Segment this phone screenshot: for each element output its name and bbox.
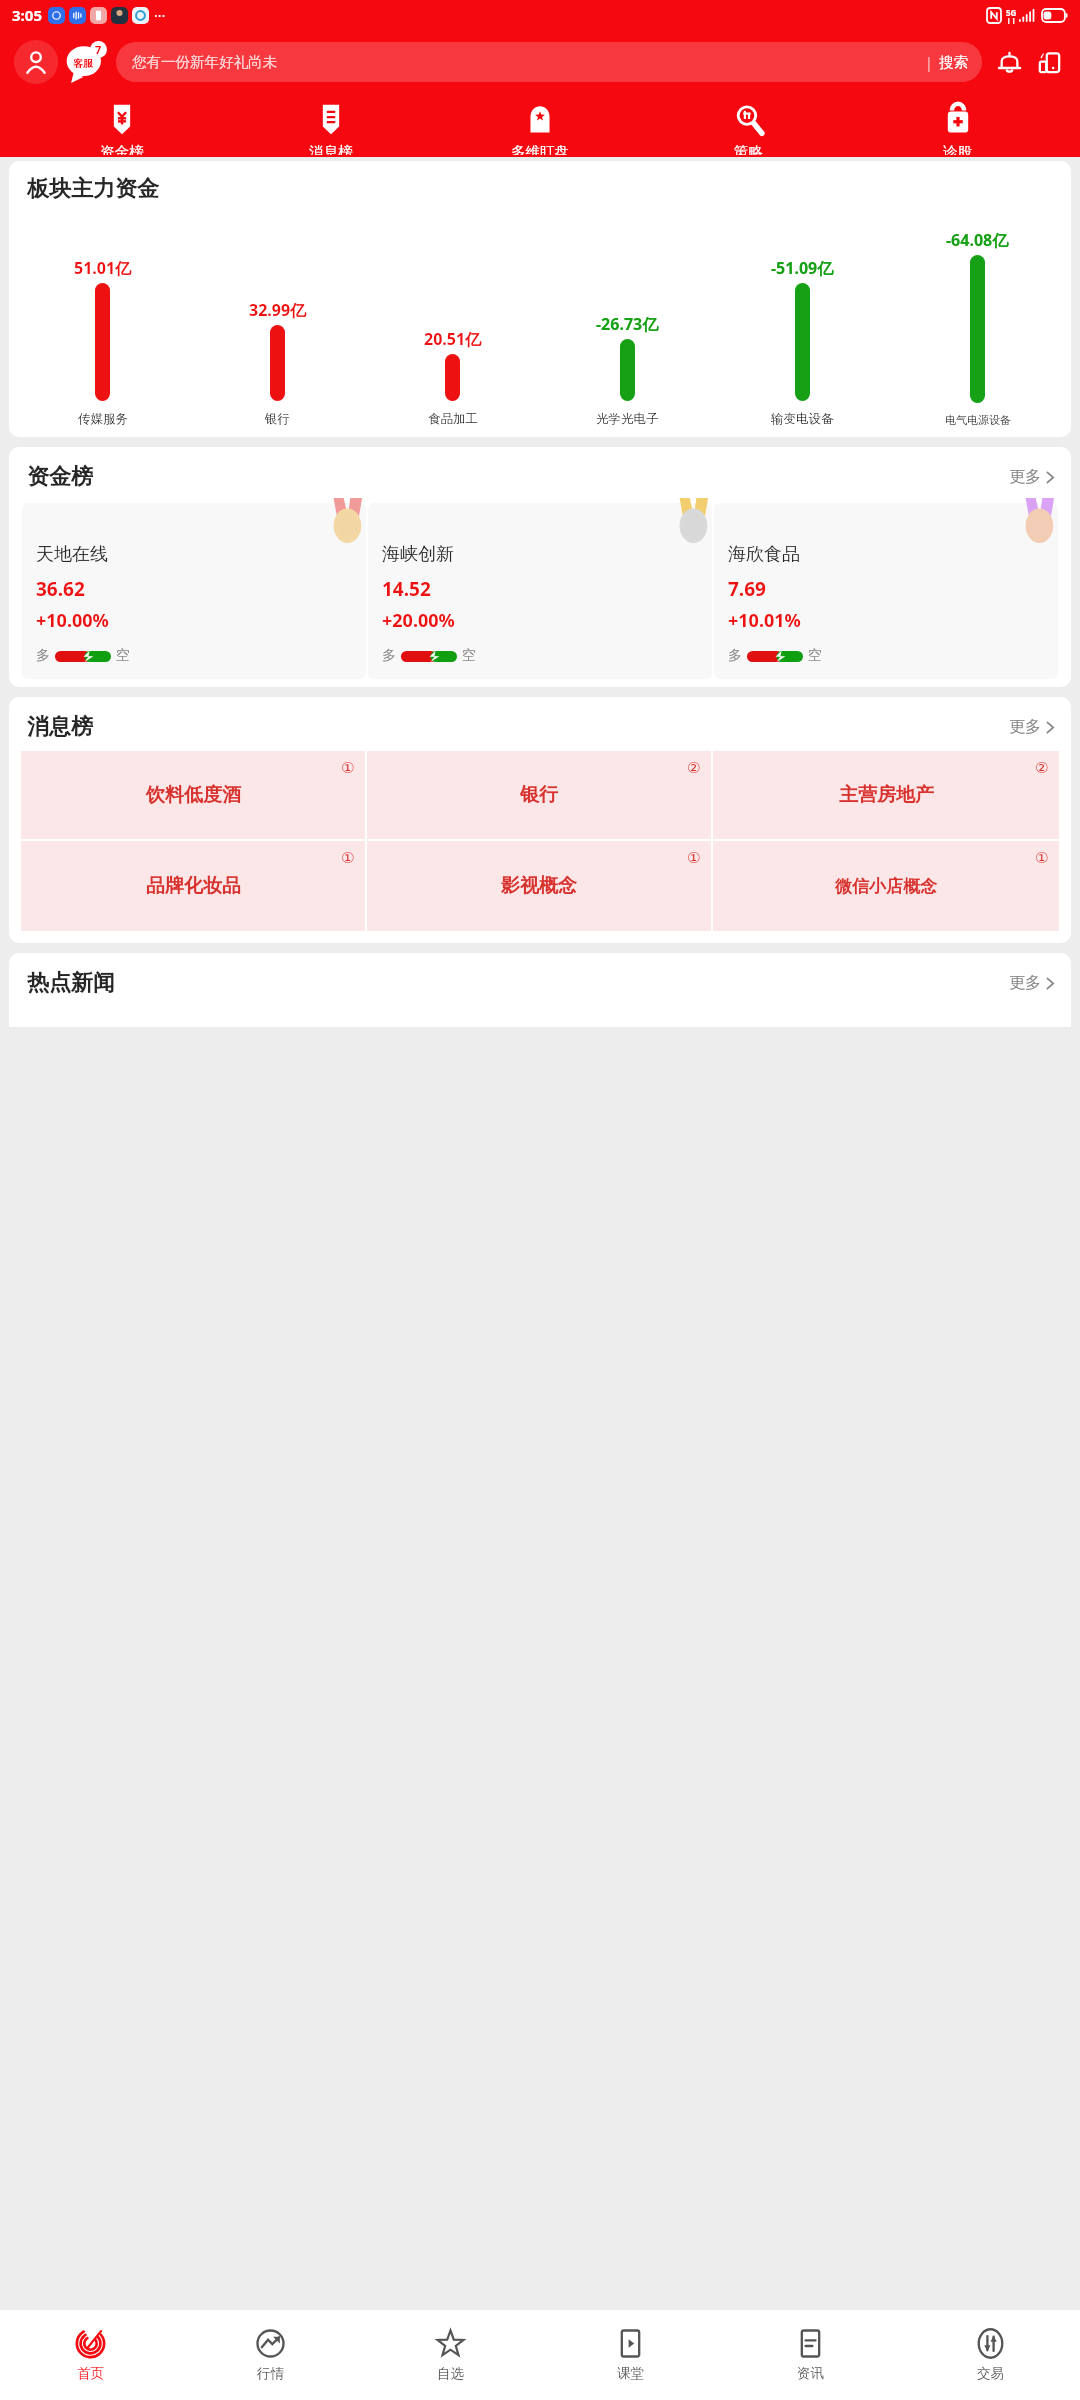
staticText: 海峡创新 <box>382 543 454 566</box>
button[interactable]: Notifications <box>992 45 1026 79</box>
button[interactable]: 品牌化妆品 <box>21 841 365 931</box>
button[interactable]: 海欣食品 <box>714 503 1058 679</box>
staticText: 多 <box>36 647 50 665</box>
staticText: | <box>925 53 933 72</box>
staticText: 影视概念 <box>501 874 577 898</box>
staticText: ② <box>687 759 701 776</box>
staticText: ① <box>1035 849 1049 866</box>
button[interactable]: 资讯 <box>720 2310 900 2400</box>
staticText: ··· <box>154 6 166 25</box>
staticText: 7 <box>95 42 102 57</box>
staticText: 银行 <box>265 411 290 427</box>
staticText: 客服 <box>73 57 93 70</box>
staticText: +20.00% <box>382 608 455 633</box>
staticText: 更多 <box>1009 467 1041 487</box>
button[interactable]: -26.73亿 <box>540 211 715 427</box>
staticText: ① <box>341 849 355 866</box>
staticText: 饮料低度酒 <box>146 783 241 807</box>
button[interactable]: 51.01亿 <box>15 211 190 427</box>
staticText: 主营房地产 <box>839 783 934 807</box>
button[interactable]: -51.09亿 <box>715 211 890 427</box>
staticText: 微信小店概念 <box>835 876 937 897</box>
button[interactable]: 多维盯盘 <box>435 100 644 157</box>
staticText: 行情 <box>257 2365 284 2382</box>
button[interactable]: -64.08亿 <box>890 211 1065 427</box>
staticText: 交易 <box>977 2365 1004 2382</box>
staticText: 5G <box>1006 7 1017 18</box>
staticText: -26.73亿 <box>596 313 659 335</box>
staticText: 搜索 <box>939 53 968 71</box>
button[interactable]: 课堂 <box>540 2310 720 2400</box>
staticText: +10.01% <box>728 608 801 633</box>
staticText: 空 <box>462 647 476 665</box>
button[interactable]: Customer service <box>64 40 108 84</box>
staticText: 3:05 <box>12 5 42 25</box>
staticText: 诊股 <box>943 143 972 155</box>
staticText: 多维盯盘 <box>511 143 569 155</box>
staticText: 输变电设备 <box>771 411 834 427</box>
staticText: 策略 <box>734 143 763 155</box>
staticText: 20.51亿 <box>424 328 482 350</box>
button[interactable]: 饮料低度酒 <box>21 751 365 839</box>
button[interactable]: 首页 <box>0 2310 180 2400</box>
button[interactable]: Apps <box>1032 45 1066 79</box>
staticText: 14.52 <box>382 576 431 602</box>
staticText: 海欣食品 <box>728 543 800 566</box>
staticText: 32.99亿 <box>249 299 307 321</box>
staticText: 更多 <box>1009 717 1041 737</box>
button[interactable]: 银行 <box>367 751 711 839</box>
staticText: 热点新闻 <box>27 969 115 997</box>
staticText: 资金榜 <box>27 463 93 491</box>
staticText: 银行 <box>520 783 558 807</box>
staticText: 自选 <box>437 2365 464 2382</box>
staticText: 7.69 <box>728 576 766 602</box>
button[interactable]: 20.51亿 <box>365 211 540 427</box>
button[interactable]: 32.99亿 <box>190 211 365 427</box>
button[interactable]: 微信小店概念 <box>713 841 1059 931</box>
button[interactable]: 自选 <box>360 2310 540 2400</box>
button[interactable]: 天地在线 <box>22 503 366 679</box>
button[interactable]: 资金榜 <box>9 447 1071 501</box>
staticText: 消息榜 <box>309 143 353 155</box>
staticText: 电气电源设备 <box>945 413 1011 427</box>
staticText: 食品加工 <box>428 411 478 427</box>
staticText: 多 <box>382 647 396 665</box>
button[interactable]: 热点新闻 <box>9 953 1071 1007</box>
button[interactable]: 行情 <box>180 2310 360 2400</box>
button[interactable]: 消息榜 <box>226 100 435 157</box>
button[interactable]: 消息榜 <box>9 697 1071 751</box>
staticText: ② <box>1035 759 1049 776</box>
staticText: 板块主力资金 <box>27 175 159 203</box>
staticText: 空 <box>808 647 822 665</box>
staticText: 资金榜 <box>100 143 144 155</box>
staticText: 消息榜 <box>27 713 93 741</box>
button[interactable]: 海峡创新 <box>368 503 712 679</box>
button[interactable]: 影视概念 <box>367 841 711 931</box>
button[interactable]: 交易 <box>900 2310 1080 2400</box>
button[interactable]: 资金榜 <box>18 100 226 157</box>
staticText: 多 <box>728 647 742 665</box>
staticText: 课堂 <box>617 2365 644 2382</box>
staticText: 传媒服务 <box>78 411 128 427</box>
staticText: 资讯 <box>797 2365 824 2382</box>
staticText: ① <box>687 849 701 866</box>
staticText: 首页 <box>77 2365 104 2382</box>
button[interactable]: Profile <box>14 40 58 84</box>
staticText: 空 <box>116 647 130 665</box>
staticText: 品牌化妆品 <box>146 874 241 898</box>
staticText: +10.00% <box>36 608 109 633</box>
staticText: 天地在线 <box>36 543 108 566</box>
button[interactable]: 诊股 <box>853 100 1062 157</box>
staticText: 36.62 <box>36 576 85 602</box>
staticText: ① <box>341 759 355 776</box>
button[interactable]: 您有一份新年好礼尚未 <box>116 42 982 82</box>
staticText: -51.09亿 <box>771 257 834 279</box>
staticText: -64.08亿 <box>946 229 1009 251</box>
staticText: 51.01亿 <box>74 257 132 279</box>
staticText: 您有一份新年好礼尚未 <box>132 53 277 71</box>
button[interactable]: 主营房地产 <box>713 751 1059 839</box>
staticText: 更多 <box>1009 973 1041 993</box>
button[interactable]: 策略 <box>644 100 853 157</box>
staticText: 光学光电子 <box>596 411 659 427</box>
